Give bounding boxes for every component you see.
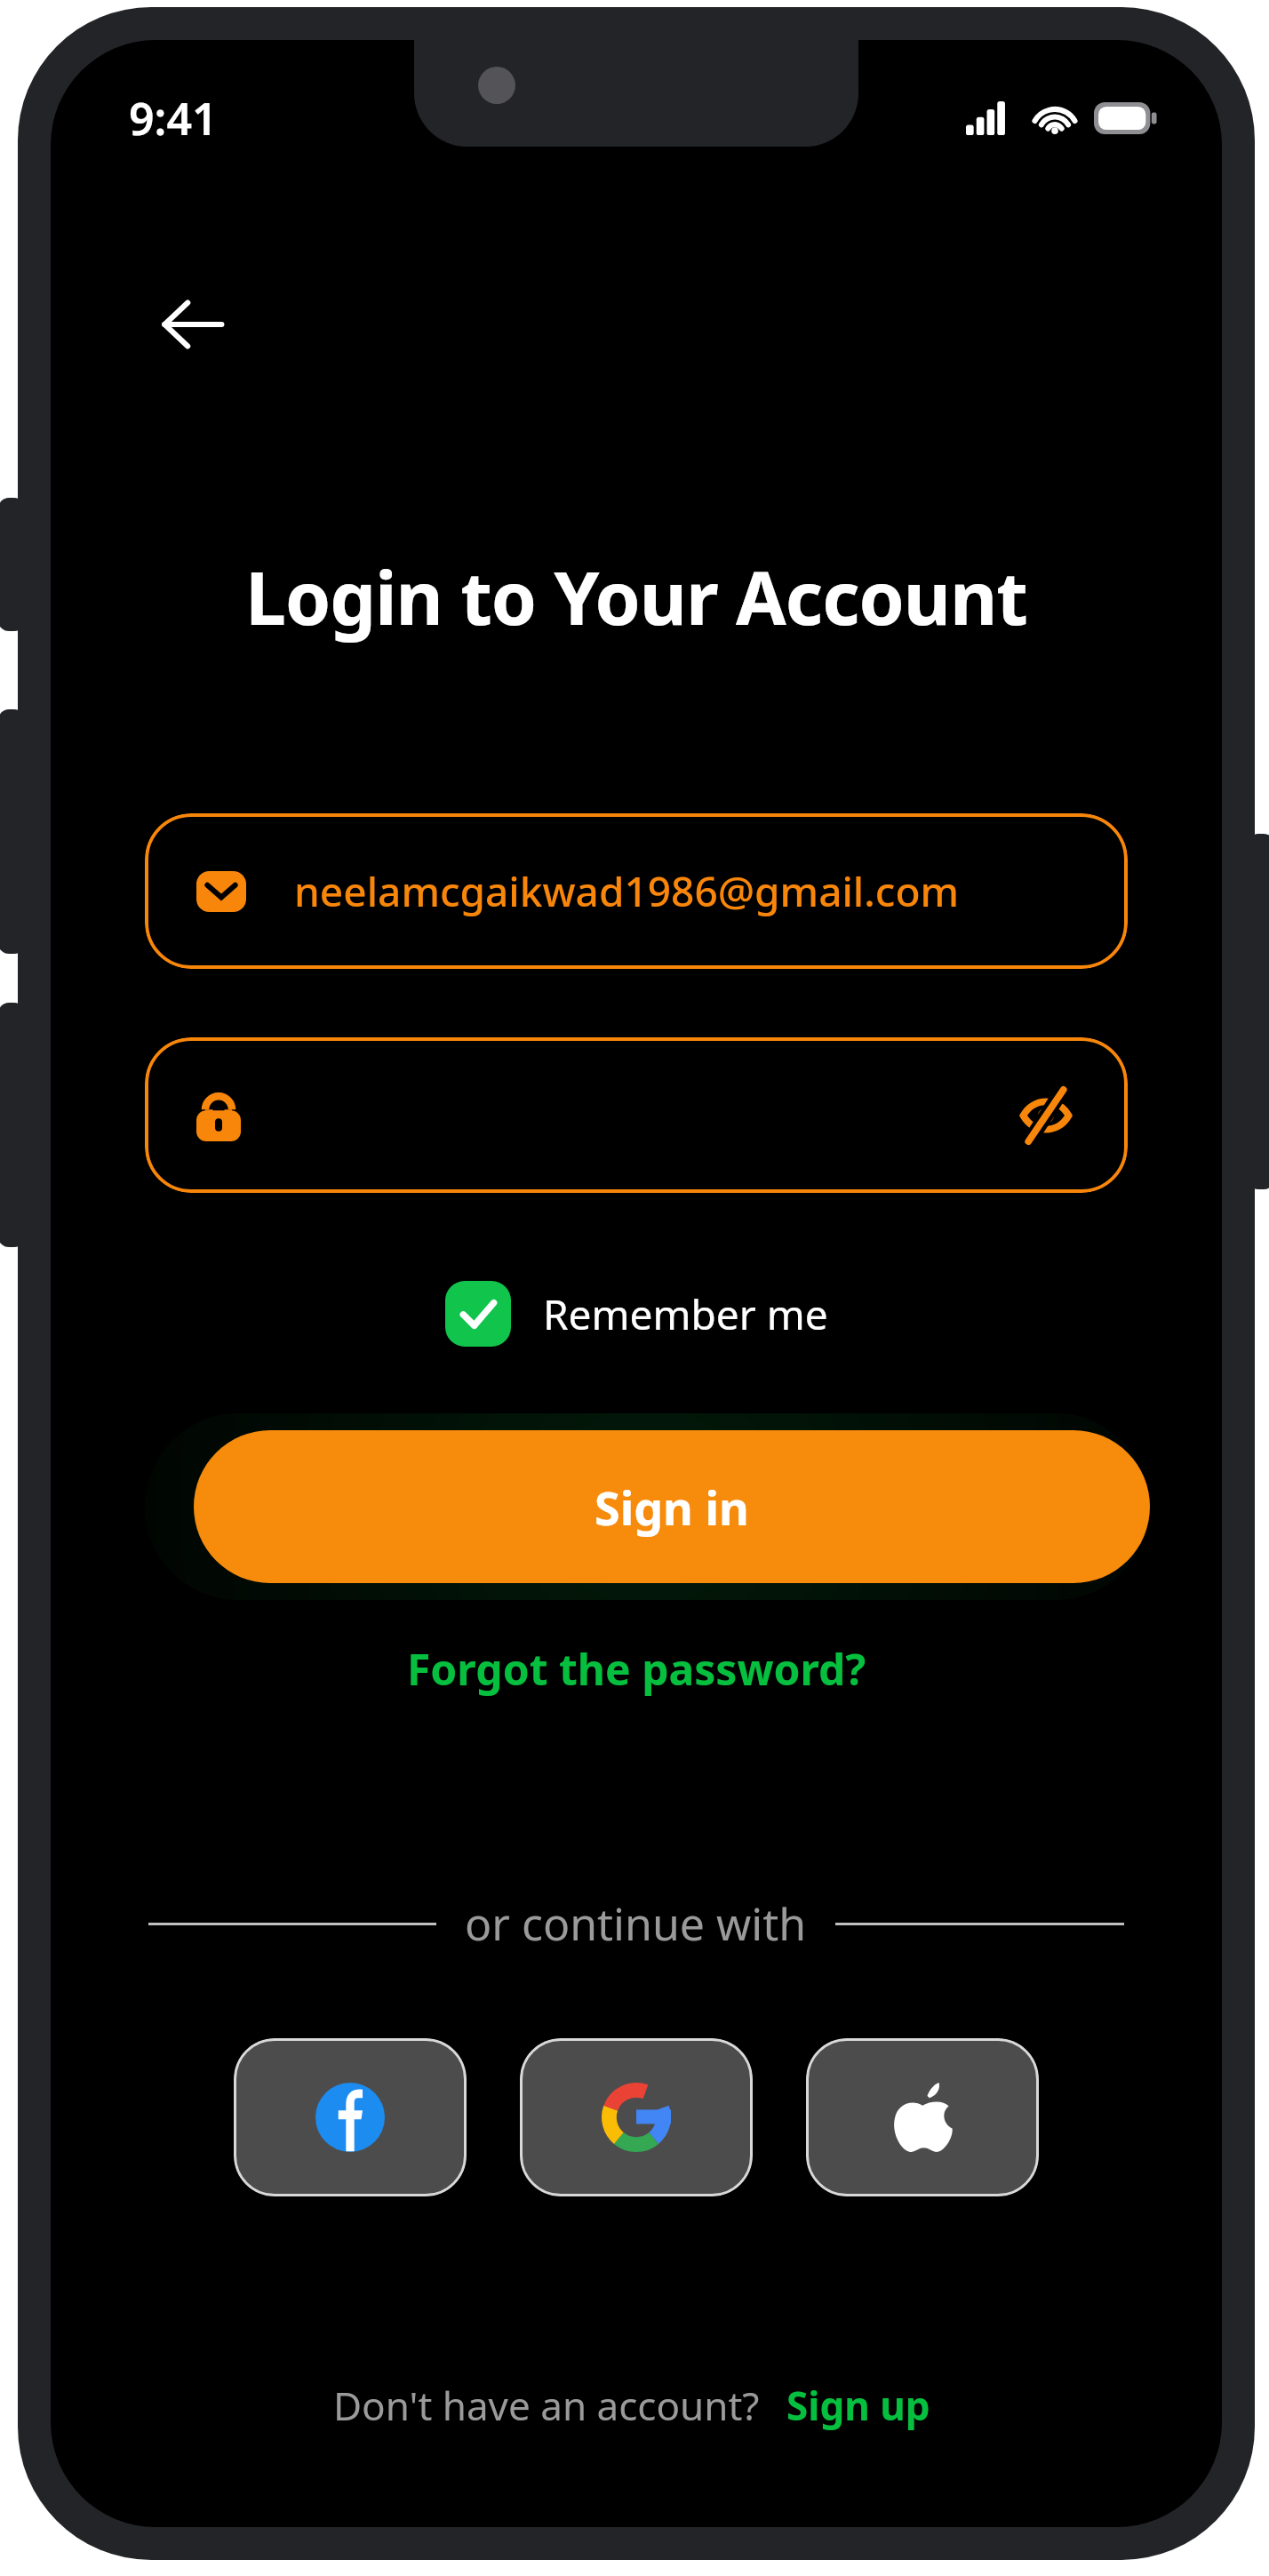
staticText: Remember me	[543, 1286, 828, 1342]
button[interactable]: Sign in with Google	[520, 2038, 753, 2196]
staticText: Sign up	[786, 2379, 930, 2432]
staticText: 9:41	[129, 88, 218, 148]
staticText: Don't have an account?	[333, 2379, 760, 2432]
button[interactable]: Show password	[145, 1037, 1128, 1193]
staticText: Forgot the password?	[407, 1640, 866, 1698]
button[interactable]: Sign in with Apple	[806, 2038, 1039, 2196]
staticText: neelamcgaikwad1986@gmail.com	[294, 863, 960, 919]
staticText: Login to Your Account	[245, 547, 1027, 646]
staticText: Sign in	[595, 1476, 749, 1539]
button[interactable]: Forgot the password?	[386, 1631, 888, 1707]
button[interactable]: Back	[135, 267, 251, 382]
button[interactable]: Sign in with Facebook	[234, 2038, 467, 2196]
button[interactable]: Remember me	[440, 1276, 834, 1352]
button[interactable]: Sign up	[778, 2373, 939, 2437]
button[interactable]: Sign in	[194, 1430, 1150, 1583]
staticText: or continue with	[465, 1893, 807, 1954]
button[interactable]: Show password	[1010, 1080, 1081, 1151]
button[interactable]: neelamcgaikwad1986@gmail.com	[145, 813, 1128, 969]
